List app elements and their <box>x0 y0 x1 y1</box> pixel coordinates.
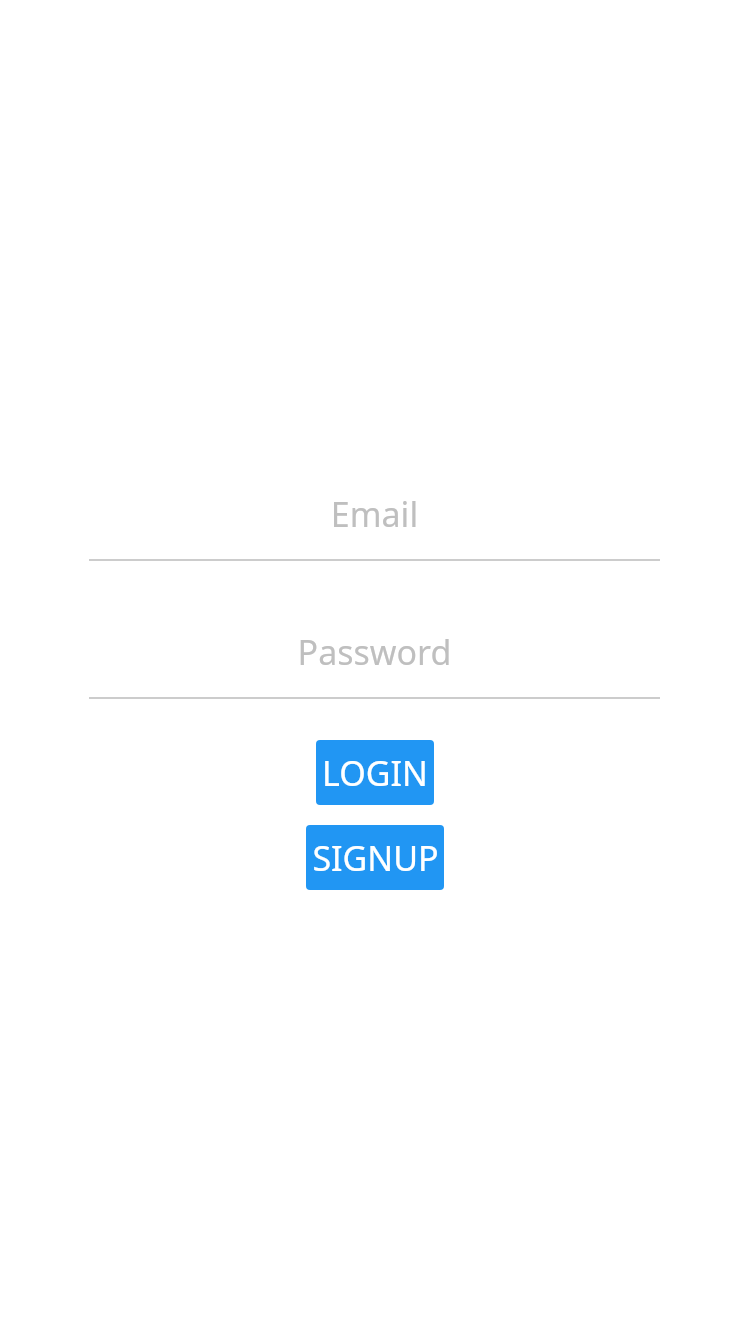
staticText: LOGIN <box>322 750 428 796</box>
staticText: Password <box>89 629 660 675</box>
button[interactable]: Password <box>89 627 660 699</box>
button[interactable]: LOGIN <box>316 740 434 805</box>
button[interactable]: Email <box>89 489 660 561</box>
staticText: Email <box>89 491 660 537</box>
button[interactable]: SIGNUP <box>306 825 444 890</box>
staticText: SIGNUP <box>312 835 439 881</box>
